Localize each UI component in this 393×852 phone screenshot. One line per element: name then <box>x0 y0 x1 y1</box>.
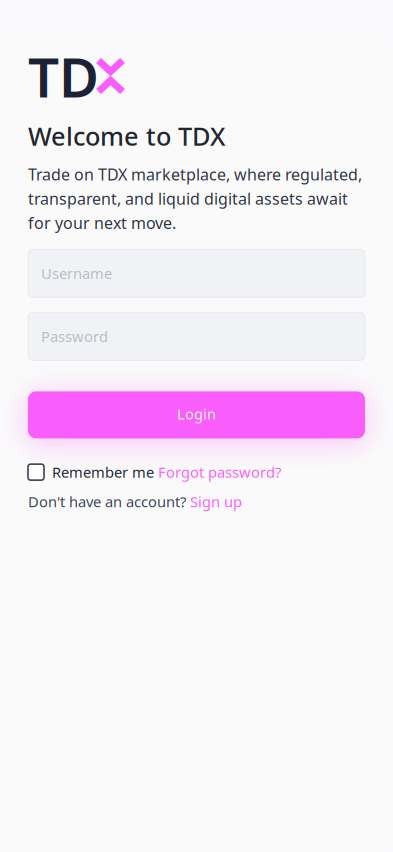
button[interactable]: Sign up <box>186 492 242 511</box>
staticText: Remember me <box>52 462 154 482</box>
button[interactable]: Login <box>28 391 365 438</box>
button[interactable]: Forgot password? <box>154 462 281 482</box>
staticText: Password <box>41 327 108 346</box>
staticText: Sign up <box>190 492 242 511</box>
staticText: Don't have an account? <box>28 492 186 511</box>
staticText: Forgot password? <box>158 462 281 482</box>
staticText: TD <box>28 40 99 113</box>
button[interactable]: Remember me <box>28 462 154 482</box>
staticText: Login <box>177 404 216 424</box>
staticText: Trade on TDX marketplace, where regulate… <box>28 164 362 233</box>
staticText: Username <box>41 264 112 283</box>
staticText: Welcome to TDX <box>28 119 225 153</box>
